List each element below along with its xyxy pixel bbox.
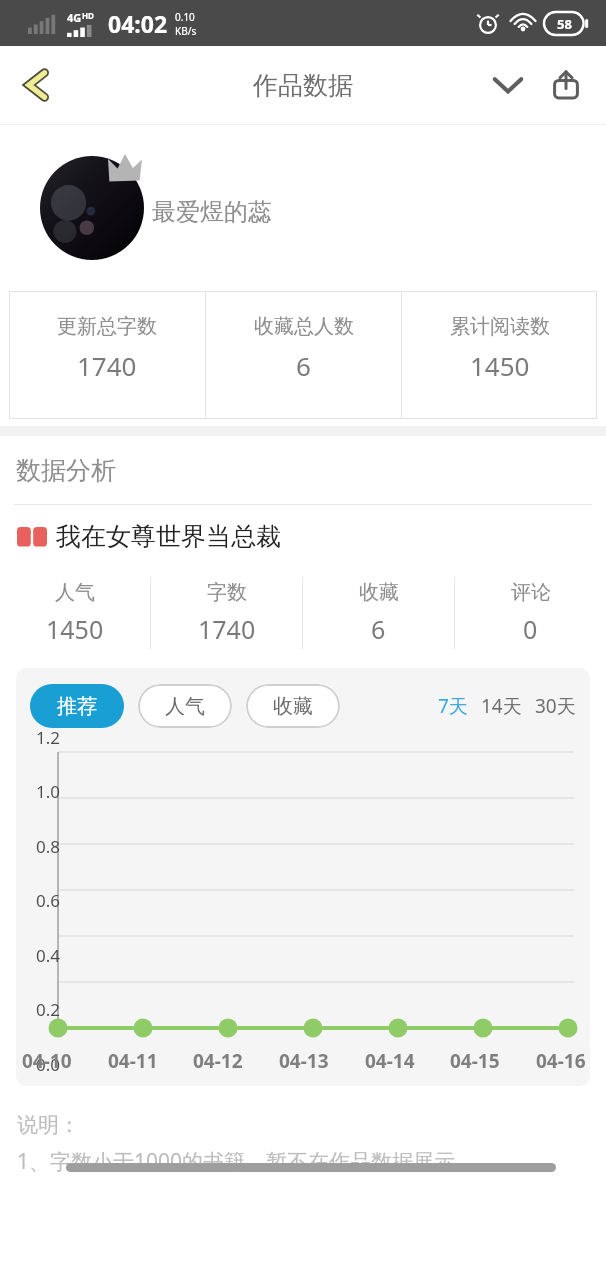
staticText: 0.6 — [20, 889, 60, 912]
staticText: 58 — [557, 15, 572, 33]
button[interactable]: 人气 — [0, 567, 150, 659]
button[interactable]: 30天 — [533, 687, 578, 725]
staticText: 0.0 — [20, 1053, 60, 1076]
staticText: 6 — [296, 348, 311, 383]
staticText: 04-13 — [279, 1048, 329, 1074]
staticText: 4G — [67, 10, 82, 25]
staticText: 14天 — [481, 693, 522, 719]
staticText: 04-12 — [193, 1048, 243, 1074]
button[interactable]: 推荐 — [30, 684, 124, 728]
staticText: KB/s — [175, 24, 197, 38]
staticText: 6 — [371, 612, 386, 646]
button[interactable]: 收藏 — [246, 684, 340, 728]
staticText: 1740 — [77, 348, 137, 383]
button[interactable]: Back — [6, 54, 68, 116]
button[interactable]: 字数 — [151, 567, 302, 659]
staticText: 评论 — [511, 580, 551, 605]
staticText: 1450 — [470, 348, 530, 383]
button[interactable]: 14天 — [479, 687, 524, 725]
staticText: 0.10 — [175, 10, 195, 24]
button[interactable]: 收藏 — [303, 567, 454, 659]
staticText: HD — [82, 10, 94, 21]
staticText: 0.8 — [20, 835, 60, 858]
staticText: 30天 — [535, 693, 576, 719]
button[interactable]: 人气 — [138, 684, 232, 728]
button[interactable]: 累计阅读数 — [402, 291, 597, 419]
staticText: 1、字数小于1000的书籍，暂不在作品数据展示 — [17, 1147, 456, 1176]
staticText: 收藏 — [273, 694, 313, 719]
button[interactable]: 7天 — [436, 687, 470, 725]
staticText: 字数 — [207, 580, 247, 605]
staticText: 收藏总人数 — [254, 314, 354, 339]
staticText: 04-11 — [108, 1048, 158, 1074]
staticText: 0.4 — [20, 944, 60, 967]
button[interactable]: 更新总字数 — [9, 291, 205, 419]
staticText: 7天 — [438, 693, 468, 719]
staticText: 1740 — [198, 612, 256, 646]
staticText: 04:02 — [108, 8, 168, 39]
staticText: 累计阅读数 — [450, 314, 550, 339]
button[interactable]: Share — [540, 59, 592, 111]
staticText: 最爱煜的蕊 — [152, 197, 272, 227]
staticText: 作品数据 — [253, 70, 353, 101]
staticText: 人气 — [165, 694, 205, 719]
staticText: 1450 — [46, 612, 104, 646]
staticText: 推荐 — [57, 694, 97, 719]
staticText: 1.0 — [20, 780, 60, 803]
staticText: 说明： — [17, 1112, 80, 1138]
staticText: 1.2 — [20, 726, 60, 749]
staticText: 0.2 — [20, 998, 60, 1021]
staticText: 04-10 — [22, 1048, 72, 1074]
button[interactable] — [40, 156, 144, 260]
staticText: 数据分析 — [16, 455, 116, 486]
staticText: 我在女尊世界当总裁 — [56, 521, 281, 552]
staticText: 收藏 — [359, 580, 399, 605]
button[interactable]: 我在女尊世界当总裁 — [0, 505, 606, 567]
button[interactable]: Expand — [482, 59, 534, 111]
staticText: 04-14 — [365, 1048, 415, 1074]
staticText: 人气 — [55, 580, 95, 605]
staticText: 04-15 — [450, 1048, 500, 1074]
staticText: 04-16 — [536, 1048, 586, 1074]
staticText: 0 — [523, 612, 538, 646]
button[interactable]: 评论 — [455, 567, 606, 659]
staticText: 更新总字数 — [57, 314, 157, 339]
button[interactable]: 收藏总人数 — [206, 291, 401, 419]
